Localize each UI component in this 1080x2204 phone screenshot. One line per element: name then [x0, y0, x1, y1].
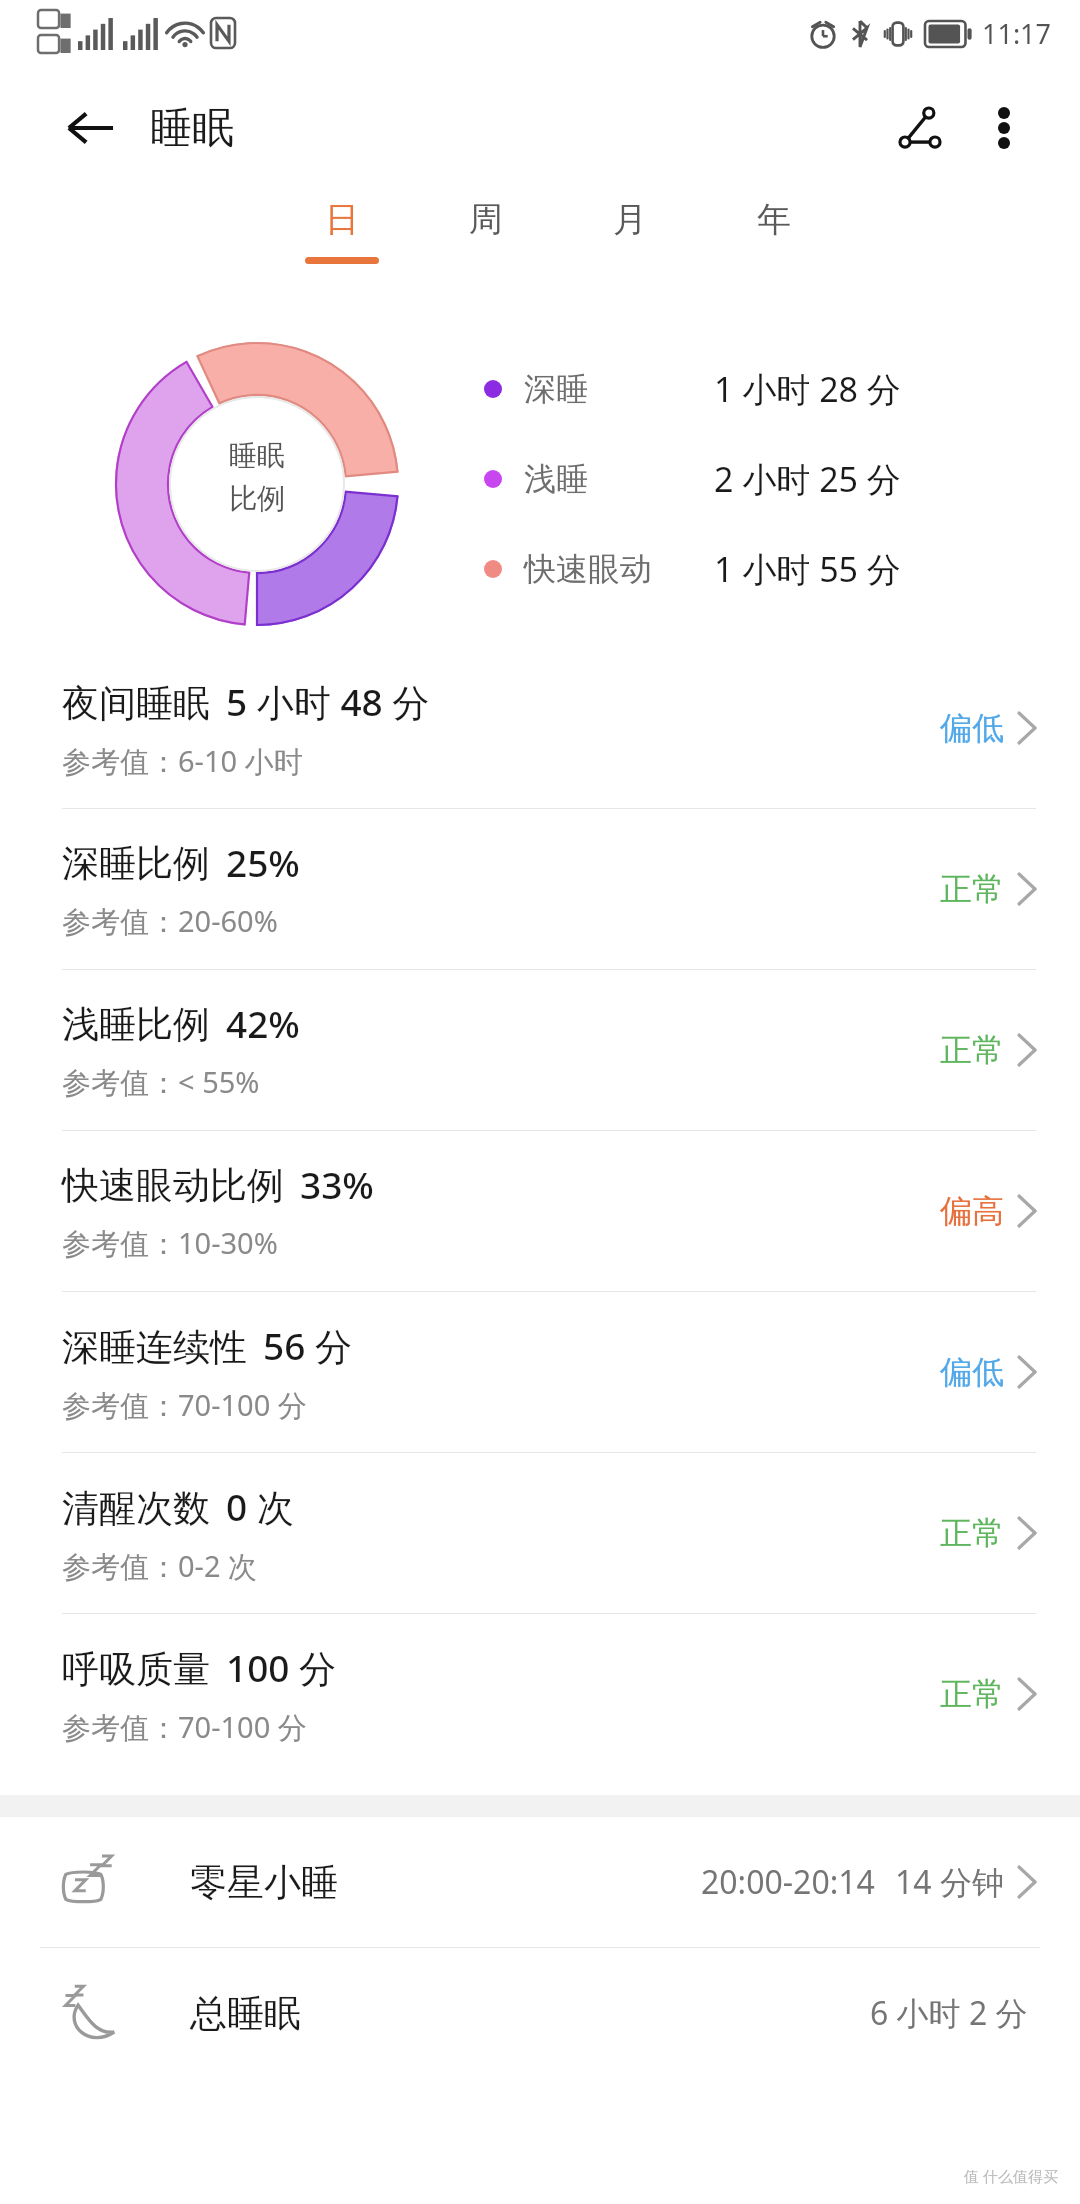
- staticText: 睡眠: [150, 102, 234, 155]
- staticText: 日: [325, 198, 359, 241]
- staticText: 参考值：6-10 小时: [62, 741, 303, 781]
- staticText: 深睡: [524, 369, 714, 409]
- staticText: 0 次: [226, 1481, 294, 1532]
- staticText: 浅睡比例: [62, 1001, 210, 1048]
- button[interactable]: 日: [270, 198, 414, 264]
- button[interactable]: 快速眼动比例: [0, 1131, 1080, 1292]
- staticText: 深睡比例: [62, 840, 210, 887]
- staticText: 6 小时 2 分: [870, 1991, 1028, 2035]
- button[interactable]: 深睡比例: [0, 809, 1080, 970]
- staticText: 值 什么值得买: [964, 2166, 1058, 2186]
- staticText: 正常: [940, 869, 1004, 909]
- staticText: 睡眠: [229, 438, 285, 473]
- staticText: 零星小睡: [190, 1859, 338, 1906]
- staticText: 深睡连续性: [62, 1324, 247, 1371]
- button[interactable]: 清醒次数: [0, 1453, 1080, 1614]
- staticText: 参考值：70-100 分: [62, 1385, 307, 1425]
- staticText: 100 分: [226, 1642, 337, 1693]
- button[interactable]: 月: [558, 198, 702, 257]
- button[interactable]: 周: [414, 198, 558, 257]
- staticText: 周: [469, 198, 503, 241]
- staticText: 5 小时 48 分: [226, 676, 430, 727]
- staticText: 正常: [940, 1030, 1004, 1070]
- staticText: 快速眼动比例: [62, 1162, 284, 1209]
- staticText: 11:17: [982, 15, 1052, 52]
- staticText: 清醒次数: [62, 1485, 210, 1532]
- button[interactable]: 夜间睡眠: [0, 648, 1080, 809]
- staticText: 14 分钟: [895, 1860, 1004, 1904]
- staticText: 1 小时 28 分: [714, 366, 986, 412]
- staticText: 56 分: [263, 1320, 352, 1371]
- staticText: 25%: [226, 837, 300, 887]
- staticText: 正常: [940, 1674, 1004, 1714]
- button[interactable]: 呼吸质量: [0, 1614, 1080, 1774]
- staticText: 浅睡: [524, 459, 714, 499]
- button[interactable]: More options: [974, 98, 1034, 158]
- staticText: 夜间睡眠: [62, 680, 210, 727]
- button[interactable]: 年: [702, 198, 846, 257]
- staticText: 2 小时 25 分: [714, 456, 986, 502]
- button[interactable]: 零星小睡: [0, 1817, 1080, 1947]
- staticText: 42%: [226, 998, 300, 1048]
- staticText: 参考值：< 55%: [62, 1062, 260, 1102]
- staticText: 参考值：10-30%: [62, 1223, 278, 1263]
- button[interactable]: 总睡眠: [0, 1948, 1080, 2078]
- staticText: 总睡眠: [190, 1990, 301, 2037]
- button[interactable]: Share: [888, 96, 952, 160]
- staticText: 20:00-20:14: [701, 1860, 875, 1904]
- button[interactable]: 浅睡比例: [0, 970, 1080, 1131]
- staticText: 快速眼动: [524, 549, 714, 589]
- staticText: 偏低: [940, 1352, 1004, 1392]
- button[interactable]: 深睡连续性: [0, 1292, 1080, 1453]
- staticText: 参考值：0-2 次: [62, 1546, 258, 1586]
- staticText: 偏低: [940, 708, 1004, 748]
- staticText: 年: [757, 198, 791, 241]
- staticText: 比例: [229, 481, 285, 516]
- staticText: 偏高: [940, 1191, 1004, 1231]
- button[interactable]: Back: [62, 100, 118, 156]
- staticText: 1 小时 55 分: [714, 546, 986, 592]
- staticText: 参考值：70-100 分: [62, 1707, 307, 1747]
- staticText: 参考值：20-60%: [62, 901, 278, 941]
- staticText: 月: [613, 198, 647, 241]
- staticText: 呼吸质量: [62, 1646, 210, 1693]
- staticText: 正常: [940, 1513, 1004, 1553]
- staticText: 33%: [300, 1159, 374, 1209]
